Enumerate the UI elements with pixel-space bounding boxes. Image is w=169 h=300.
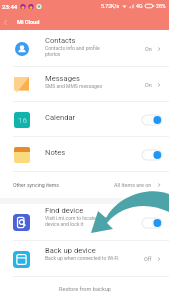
staticText: Back up device bbox=[45, 246, 96, 255]
staticText: 5.72K/s bbox=[101, 3, 120, 9]
button[interactable]: Back bbox=[0, 17, 11, 28]
staticText: 16 bbox=[18, 116, 27, 125]
staticText: Visit i.mi.com to locate your device and… bbox=[45, 215, 113, 227]
staticText: Off bbox=[144, 256, 152, 262]
button[interactable]: Restore from backup bbox=[0, 278, 169, 300]
staticText: Mi Cloud bbox=[17, 19, 40, 26]
staticText: Back up when connected to Wi-Fi bbox=[45, 255, 129, 261]
button[interactable]: 16 bbox=[0, 102, 169, 137]
button[interactable]: Find device bbox=[0, 204, 169, 241]
staticText: Messages bbox=[45, 74, 80, 83]
staticText: Notes bbox=[45, 148, 66, 157]
staticText: Find device bbox=[45, 206, 84, 215]
staticText: 4G bbox=[136, 3, 143, 9]
staticText: 23:44 bbox=[2, 3, 18, 10]
button[interactable]: Contacts bbox=[0, 30, 169, 67]
staticText: All items are on bbox=[114, 182, 152, 188]
button[interactable]: Back up device bbox=[0, 241, 169, 277]
staticText: On bbox=[145, 82, 152, 88]
staticText: Contacts bbox=[45, 36, 76, 45]
staticText: 28% bbox=[156, 3, 166, 9]
button[interactable]: Notes bbox=[0, 137, 169, 172]
staticText: Contacts info and profile photos bbox=[45, 45, 107, 57]
staticText: Calendar bbox=[45, 113, 76, 122]
button[interactable]: Other syncing items bbox=[0, 172, 169, 198]
staticText: On bbox=[145, 46, 152, 52]
staticText: SMS and MMS messages bbox=[45, 83, 115, 89]
button[interactable]: Messages bbox=[0, 67, 169, 102]
staticText: Restore from backup bbox=[59, 286, 111, 293]
staticText: Other syncing items bbox=[13, 182, 59, 188]
